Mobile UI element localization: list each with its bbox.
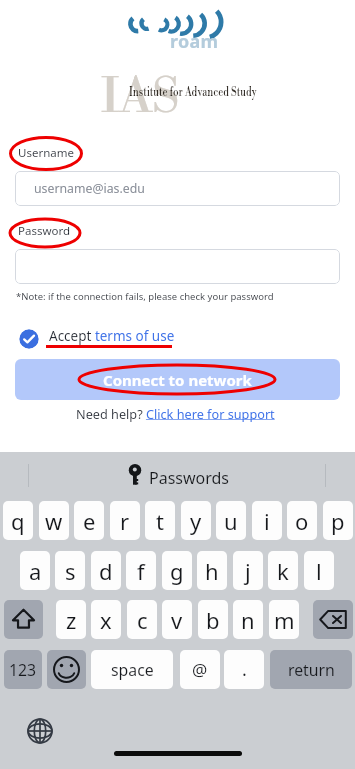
button[interactable]: b [198,600,228,639]
staticText: z [66,605,77,635]
staticText: i [264,506,270,536]
staticText: roam [170,29,219,54]
staticText: IAS [101,68,180,128]
button[interactable]: x [91,600,121,639]
button[interactable]: z [56,600,86,639]
staticText: e [83,506,96,536]
button[interactable]: t [145,501,175,540]
staticText: r [120,506,130,536]
button[interactable]: u [216,501,246,540]
staticText: q [11,506,25,536]
staticText: username@ias.edu [34,180,145,197]
button[interactable]: f [126,551,156,590]
staticText: Institute for Advanced Study [129,85,257,100]
button[interactable]: h [197,551,227,590]
button[interactable]: l [304,551,334,590]
staticText: d [99,556,113,586]
button[interactable]: i [252,501,282,540]
button[interactable]: Username [18,145,74,161]
button[interactable]: Accept terms checkbox [19,329,39,349]
staticText: Passwords [149,467,230,489]
staticText: Need help? Click here for support [76,405,275,422]
staticText: s [65,556,76,586]
staticText: . [242,657,247,682]
button[interactable]: Passwords [0,452,355,498]
button[interactable]: Backspace [313,600,353,639]
button[interactable]: Need help? Click here for support [76,405,275,422]
button[interactable]: d [91,551,121,590]
button[interactable]: space [91,650,173,689]
button[interactable]: username@ias.edu [15,171,340,206]
button[interactable] [15,249,340,284]
staticText: f [137,556,145,586]
button[interactable]: v [162,600,192,639]
button[interactable]: Emoji [47,650,86,689]
staticText: c [137,605,148,635]
staticText: space [111,659,154,681]
button[interactable]: @ [180,650,220,689]
staticText: j [245,556,251,586]
button[interactable]: Switch keyboard language [27,718,53,744]
staticText: l [316,556,322,586]
button[interactable]: p [323,501,353,540]
staticText: p [331,506,345,536]
button[interactable]: Accept terms of use [49,327,175,345]
staticText: a [29,556,42,586]
staticText: 123 [9,659,37,681]
staticText: h [205,556,219,586]
staticText: n [241,605,255,635]
button[interactable]: k [268,551,298,590]
staticText: Password [18,223,71,239]
staticText: m [274,605,295,635]
staticText: *Note: if the connection fails, please c… [16,290,274,303]
button[interactable]: . [224,650,264,689]
button[interactable]: 123 [4,650,42,689]
staticText: @ [192,658,208,681]
staticText: o [295,506,309,536]
button[interactable]: a [20,551,50,590]
button[interactable]: c [127,600,157,639]
button[interactable]: m [269,600,299,639]
staticText: k [277,556,289,586]
button[interactable]: Connect to network [15,359,340,400]
button[interactable]: n [233,600,263,639]
button[interactable]: w [39,501,69,540]
staticText: t [156,506,164,536]
button[interactable]: Shift [4,600,43,639]
staticText: y [190,506,202,536]
button[interactable]: g [162,551,192,590]
staticText: w [45,506,63,536]
button[interactable]: e [74,501,104,540]
staticText: v [171,605,183,635]
staticText: g [170,556,184,586]
staticText: b [206,605,220,635]
button[interactable]: return [270,650,352,689]
staticText: Username [18,145,74,161]
staticText: return [288,659,335,681]
staticText: Connect to network [103,370,252,390]
button[interactable]: r [110,501,140,540]
staticText: u [224,506,238,536]
button[interactable]: o [287,501,317,540]
button[interactable]: j [233,551,263,590]
button[interactable]: y [181,501,211,540]
button[interactable]: Password [18,223,71,239]
button[interactable]: s [55,551,85,590]
staticText: Accept terms of use [49,327,175,345]
staticText: x [100,605,112,635]
button[interactable]: q [3,501,33,540]
